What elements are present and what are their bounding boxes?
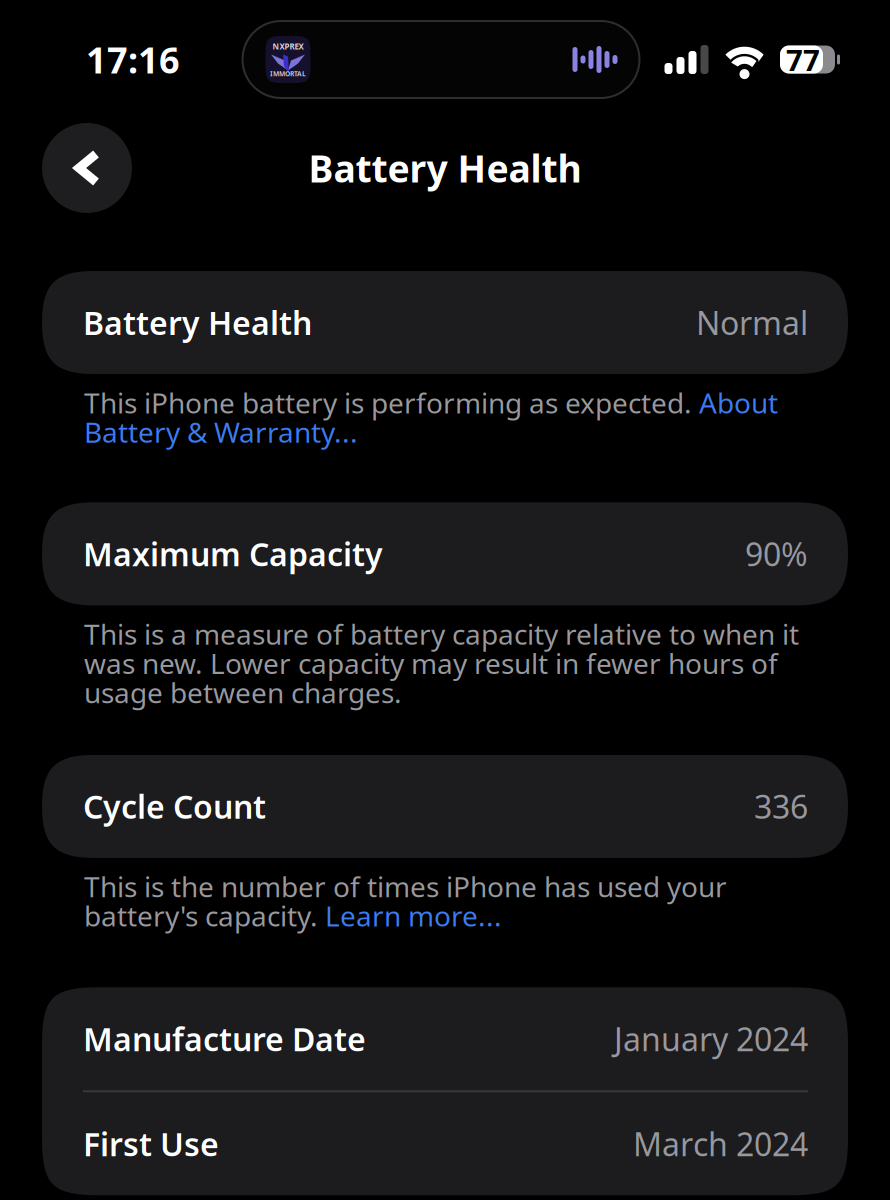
staticText: NXPREX xyxy=(272,41,303,52)
button[interactable]: First Use xyxy=(42,1092,848,1195)
staticText: January 2024 xyxy=(614,1017,808,1060)
staticText: Normal xyxy=(696,301,808,344)
button[interactable]: Cycle Count xyxy=(42,755,848,858)
button[interactable]: Battery Health xyxy=(42,271,848,374)
staticText: This iPhone battery is performing as exp… xyxy=(84,384,778,450)
staticText: Battery Health xyxy=(83,301,312,344)
staticText: IMMORTAL xyxy=(270,69,306,78)
staticText: 17:16 xyxy=(86,36,180,83)
staticText: Cycle Count xyxy=(83,785,266,828)
staticText: This is the number of times iPhone has u… xyxy=(84,868,727,934)
staticText: 90% xyxy=(745,533,808,575)
staticText: Manufacture Date xyxy=(83,1017,366,1060)
button[interactable]: Manufacture Date xyxy=(42,987,848,1090)
staticText: First Use xyxy=(83,1122,219,1165)
staticText: Maximum Capacity xyxy=(83,533,383,575)
staticText: This is a measure of battery capacity re… xyxy=(84,615,799,711)
staticText: Battery Health xyxy=(308,143,581,193)
staticText: March 2024 xyxy=(633,1122,808,1165)
staticText: 336 xyxy=(754,785,808,828)
button[interactable]: Maximum Capacity xyxy=(42,502,848,605)
staticText: 77 xyxy=(786,40,820,79)
button[interactable]: Back xyxy=(42,123,132,213)
